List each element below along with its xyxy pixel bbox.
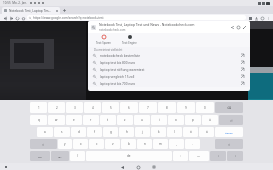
- staticText: d: [78, 130, 80, 134]
- button[interactable]: Use suggestion: [240, 67, 245, 72]
- button[interactable]: f: [87, 127, 102, 137]
- button[interactable]: y: [58, 139, 72, 149]
- button[interactable]: 0: [196, 102, 214, 113]
- staticText: 1: [38, 106, 40, 110]
- button[interactable]: g: [103, 127, 118, 137]
- staticText: m: [159, 142, 162, 146]
- button[interactable]: Edit: [241, 24, 247, 30]
- staticText: 5: [110, 106, 112, 110]
- button[interactable]: Downloads: [253, 15, 259, 21]
- button[interactable]: h: [119, 127, 134, 137]
- button[interactable]: j: [135, 127, 150, 137]
- button[interactable]: x: [73, 139, 88, 149]
- button[interactable]: Test: Engine: [120, 34, 139, 46]
- button[interactable]: t: [100, 115, 116, 125]
- button[interactable]: Bookmarks: [247, 15, 253, 21]
- button[interactable]: w: [48, 115, 65, 125]
- button[interactable]: i: [151, 115, 167, 125]
- button[interactable]: ⇧: [215, 139, 243, 149]
- button[interactable]: Test: Sparen: [94, 34, 113, 46]
- button[interactable]: ⌫: [215, 102, 243, 113]
- button[interactable]: Reload: [14, 15, 20, 21]
- button[interactable]: Profile: [259, 15, 265, 21]
- button[interactable]: 1: [30, 102, 47, 113]
- button[interactable]: d: [71, 127, 86, 137]
- button[interactable]: Use suggestion: [240, 74, 245, 79]
- button[interactable]: Share: [229, 24, 235, 30]
- button[interactable]: 8: [158, 102, 176, 113]
- button[interactable]: Use suggestion: [240, 53, 245, 58]
- staticText: .: [192, 142, 193, 146]
- staticText: 3: [74, 106, 76, 110]
- button[interactable]: Forward: [8, 15, 14, 21]
- staticText: w: [55, 118, 58, 122]
- button[interactable]: Notebook Test, Laptop Test und News - No…: [88, 21, 250, 33]
- button[interactable]: New tab: [62, 8, 67, 13]
- button[interactable]: u: [134, 115, 150, 125]
- button[interactable]: o: [168, 115, 184, 125]
- button[interactable]: Home: [20, 15, 26, 21]
- button[interactable]: c: [89, 139, 104, 149]
- button[interactable]: laptop test stiftung warentest: [88, 66, 250, 73]
- button[interactable]: notebookcheck bestenliste: [88, 52, 250, 59]
- button[interactable]: ü: [202, 115, 218, 125]
- staticText: Ctrl: [38, 155, 42, 158]
- button[interactable]: Back: [2, 15, 8, 21]
- button[interactable]: ⇧: [30, 139, 57, 149]
- staticText: ⇧: [228, 143, 231, 146]
- button[interactable]: ä: [199, 127, 214, 137]
- button[interactable]: Use suggestion: [240, 81, 245, 86]
- button[interactable]: Öffnen: [215, 127, 243, 137]
- button[interactable]: Notebook Test, Laptop Tes…: [2, 7, 60, 14]
- button[interactable]: 9: [177, 102, 195, 113]
- button[interactable]: Bookmark: [235, 24, 241, 30]
- button[interactable]: Home: [135, 164, 141, 170]
- button[interactable]: l: [167, 127, 182, 137]
- button[interactable]: Keyboard: [3, 164, 8, 169]
- button[interactable]: p: [185, 115, 201, 125]
- button[interactable]: ⏎: [219, 115, 243, 125]
- button[interactable]: e: [66, 115, 82, 125]
- button[interactable]: 6: [120, 102, 138, 113]
- button[interactable]: q: [30, 115, 47, 125]
- button[interactable]: n: [137, 139, 152, 149]
- button[interactable]: —: [189, 151, 209, 161]
- staticText: x: [80, 142, 82, 146]
- button[interactable]: laptop vergleich 15 zoll: [88, 73, 250, 80]
- button[interactable]: s: [54, 127, 70, 137]
- button[interactable]: m: [153, 139, 168, 149]
- button[interactable]: 4: [84, 102, 101, 113]
- button[interactable]: laptop test bis 800 euro: [88, 59, 250, 66]
- button[interactable]: https://www.google.com/search?q=notebook…: [27, 15, 246, 20]
- button[interactable]: r: [83, 115, 99, 125]
- button[interactable]: 3: [66, 102, 83, 113]
- button[interactable]: Back: [119, 164, 125, 170]
- button[interactable]: ö: [183, 127, 198, 137]
- button[interactable]: 2: [48, 102, 65, 113]
- staticText: b: [128, 142, 130, 146]
- staticText: c: [96, 142, 98, 146]
- button[interactable]: ,: [169, 139, 184, 149]
- button[interactable]: Ctrl: [30, 151, 50, 161]
- staticText: ›: [235, 154, 236, 158]
- button[interactable]: z: [117, 115, 133, 125]
- button[interactable]: v: [105, 139, 120, 149]
- button[interactable]: a: [37, 127, 53, 137]
- button[interactable]: Recent apps: [151, 164, 157, 170]
- button[interactable]: 7: [139, 102, 157, 113]
- staticText: t: [107, 118, 109, 122]
- button[interactable]: /: [70, 151, 85, 161]
- button[interactable]: 5: [102, 102, 119, 113]
- staticText: i: [159, 118, 160, 122]
- button[interactable]: b: [121, 139, 136, 149]
- button[interactable]: Use suggestion: [240, 60, 245, 65]
- button[interactable]: de: [86, 151, 172, 161]
- button[interactable]: k: [151, 127, 166, 137]
- button[interactable]: More options: [265, 15, 271, 21]
- button[interactable]: laptop test bis 700 euro: [88, 80, 250, 87]
- button[interactable]: !#1: [51, 151, 69, 161]
